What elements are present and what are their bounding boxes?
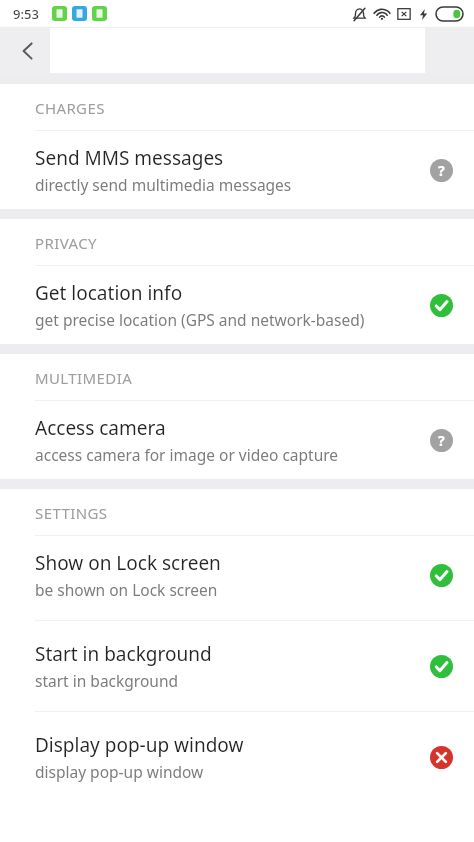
- staticText: 9:53: [13, 5, 39, 23]
- staticText: Send MMS messages: [35, 145, 224, 171]
- staticText: access camera for image or video capture: [35, 444, 339, 465]
- button[interactable]: Ask: [426, 155, 456, 185]
- staticText: get precise location (GPS and network-ba…: [35, 309, 365, 330]
- staticText: MULTIMEDIA: [35, 368, 133, 388]
- staticText: ?: [438, 431, 445, 450]
- button[interactable]: Access camera: [0, 401, 474, 479]
- staticText: display pop-up window: [35, 761, 204, 782]
- button[interactable]: Allowed: [426, 651, 456, 681]
- button[interactable]: Back: [8, 31, 48, 71]
- button[interactable]: Ask: [426, 425, 456, 455]
- staticText: SETTINGS: [35, 503, 108, 523]
- button[interactable]: Send MMS messages: [0, 131, 474, 209]
- button[interactable]: Display pop-up window: [0, 718, 474, 796]
- staticText: be shown on Lock screen: [35, 579, 218, 600]
- button[interactable]: Start in background: [0, 627, 474, 705]
- staticText: Access camera: [35, 415, 166, 441]
- button[interactable]: Denied: [426, 742, 456, 772]
- staticText: directly send multimedia messages: [35, 174, 292, 195]
- button[interactable]: Allowed: [426, 560, 456, 590]
- staticText: Start in background: [35, 641, 212, 667]
- staticText: start in background: [35, 670, 178, 691]
- staticText: PRIVACY: [35, 233, 97, 253]
- staticText: CHARGES: [35, 98, 105, 118]
- button[interactable]: Allowed: [426, 290, 456, 320]
- staticText: Show on Lock screen: [35, 550, 221, 576]
- staticText: Get location info: [35, 280, 183, 306]
- staticText: Display pop-up window: [35, 732, 244, 758]
- button[interactable]: Get location info: [0, 266, 474, 344]
- staticText: ?: [438, 161, 445, 180]
- button[interactable]: Show on Lock screen: [0, 536, 474, 614]
